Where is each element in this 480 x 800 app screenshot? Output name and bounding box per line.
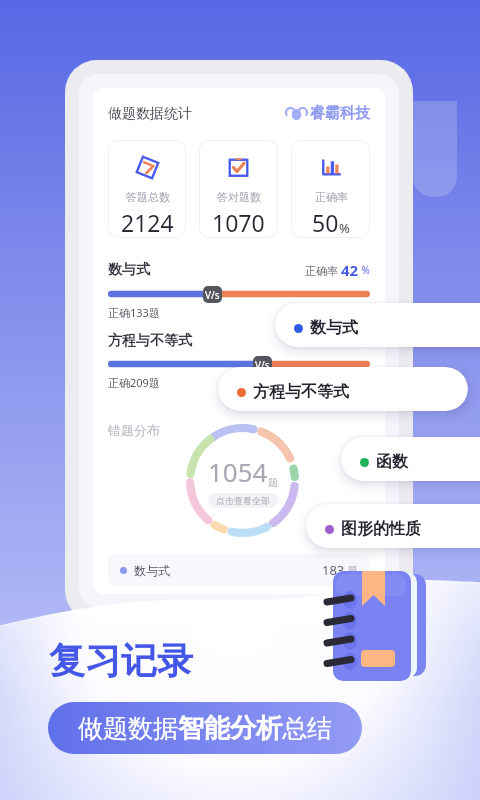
staticText: 正确率 [315, 190, 348, 204]
staticText: 正确133题 [108, 305, 160, 320]
staticText: 题 [268, 476, 278, 489]
staticText: 数与式 [310, 318, 358, 338]
staticText: 做题数据统计 [108, 105, 192, 123]
staticText: 错题分布 [108, 422, 160, 438]
button[interactable]: 点击查看全部 [208, 493, 278, 508]
staticText: % [339, 219, 350, 237]
staticText: 总结 [282, 713, 332, 744]
staticText: 2124 [121, 207, 174, 237]
staticText: 数与式 [108, 261, 150, 279]
staticText: 42 [341, 260, 359, 280]
staticText: 题 [345, 563, 358, 577]
staticText: 数与式 [134, 563, 170, 578]
staticText: 答对题数 [217, 190, 261, 204]
staticText: 做题数据 [78, 713, 178, 744]
staticText: 复习记录 [49, 638, 193, 683]
button[interactable]: 函数 [341, 437, 480, 481]
button[interactable]: 图形的性质 [306, 504, 480, 548]
staticText: 183 [322, 561, 345, 579]
button[interactable]: 方程与不等式 [218, 367, 468, 411]
staticText: 方程与不等式 [253, 382, 349, 402]
staticText: 函数 [376, 452, 408, 472]
button[interactable]: 数与式 [108, 554, 370, 586]
staticText: 50 [312, 207, 339, 237]
button[interactable]: 答对题数 [200, 141, 277, 237]
staticText: 点击查看全部 [216, 495, 270, 506]
staticText: V/s [255, 358, 270, 372]
staticText: 1054 [208, 454, 268, 489]
button[interactable]: 数与式 [275, 303, 480, 347]
button[interactable]: 正确率 [292, 141, 369, 237]
staticText: 正确209题 [108, 375, 160, 390]
staticText: % [359, 263, 370, 277]
staticText: V/s [205, 288, 220, 302]
button[interactable]: 答题总数 [109, 141, 185, 237]
staticText: 睿霸科技 [310, 104, 370, 123]
staticText: 1070 [212, 207, 265, 237]
staticText: 智能分析 [178, 712, 282, 745]
button[interactable]: 做题数据 [48, 702, 362, 754]
staticText: 正确率 [334, 334, 370, 349]
staticText: 图形的性质 [341, 519, 421, 539]
staticText: 答题总数 [126, 190, 170, 204]
staticText: 正确率 [305, 263, 341, 278]
staticText: 方程与不等式 [108, 332, 192, 350]
